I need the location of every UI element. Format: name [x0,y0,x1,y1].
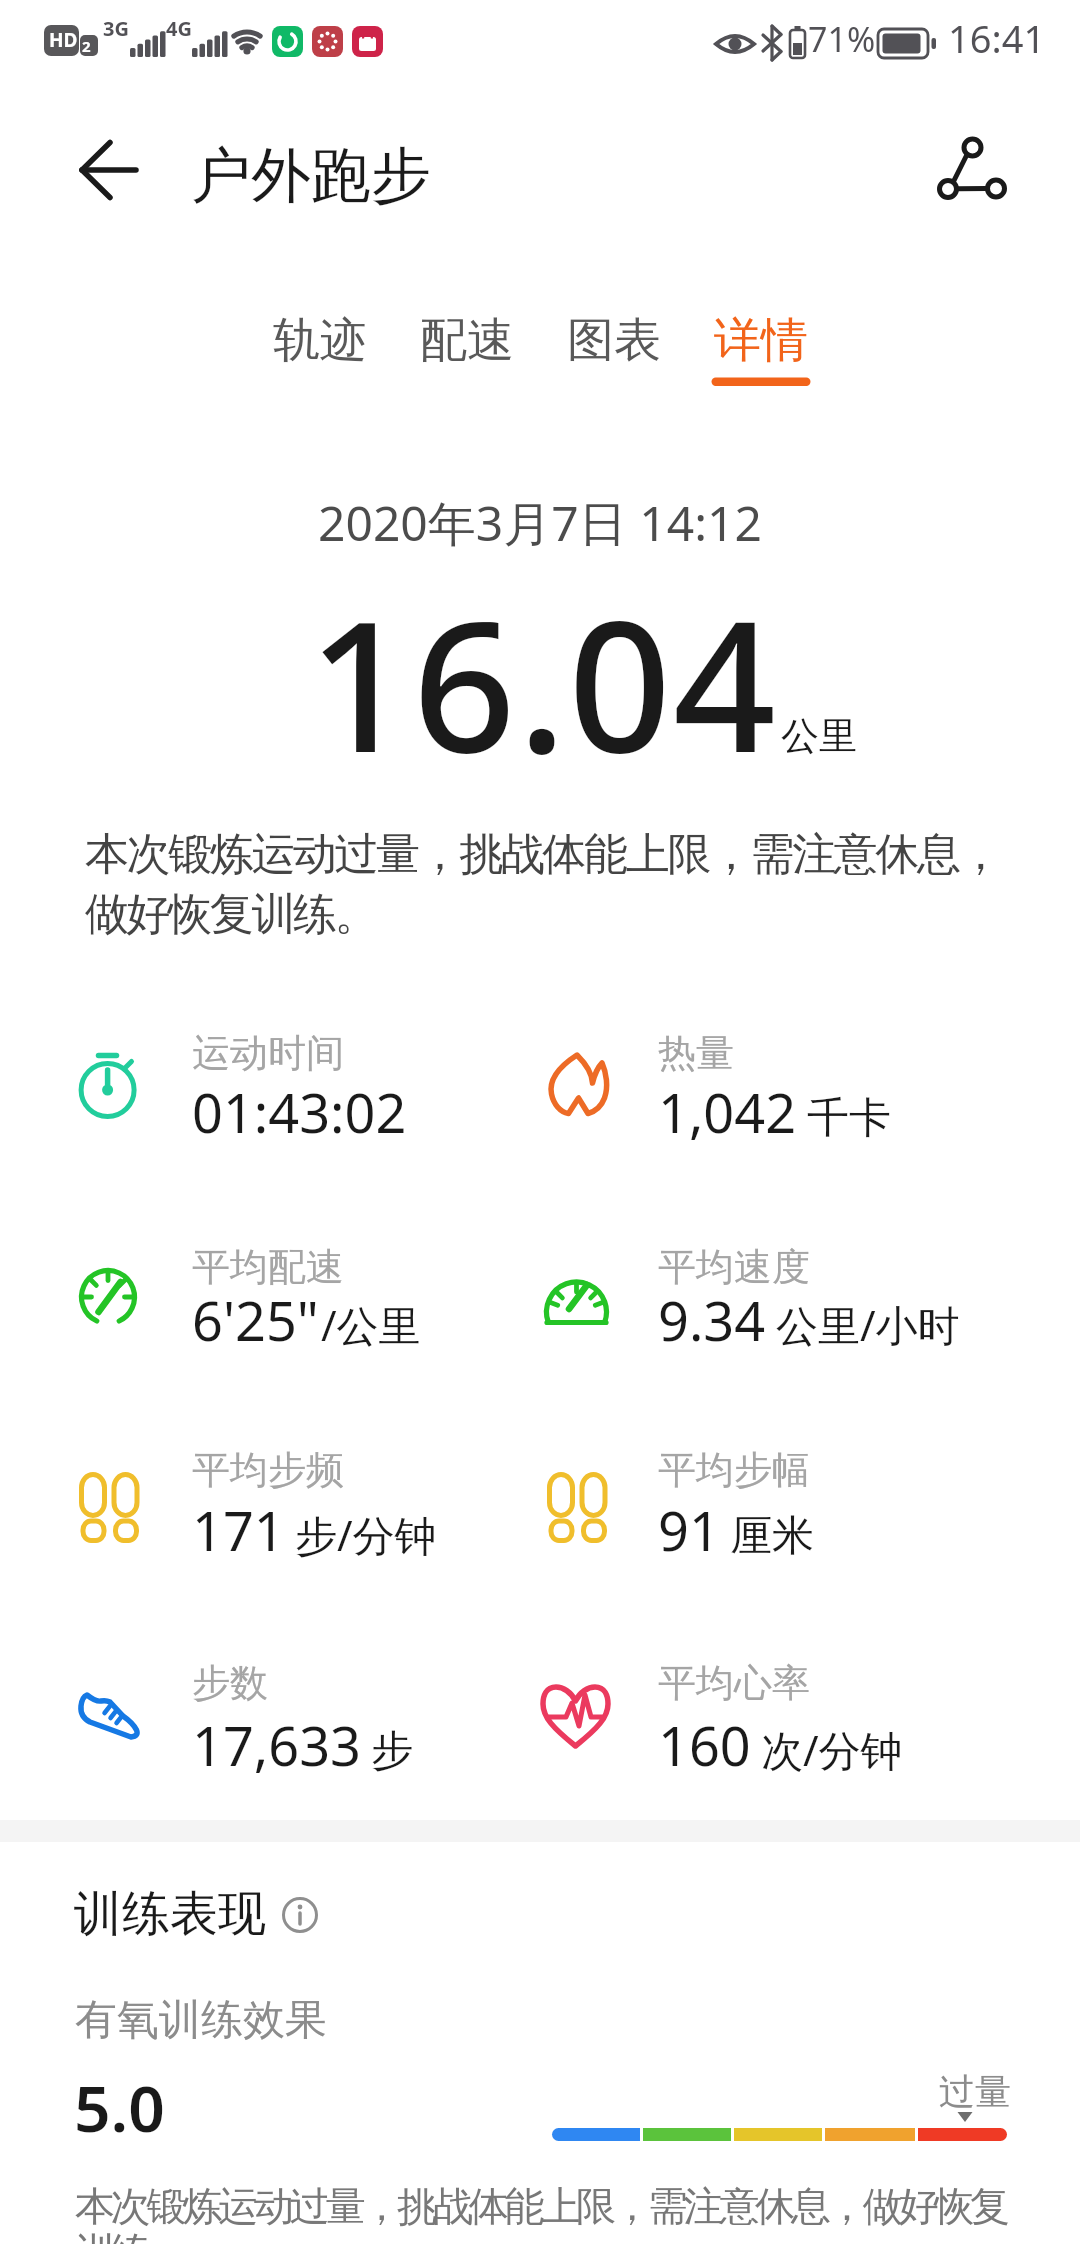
staticText: 2 [82,36,91,56]
staticText: 厘米 [730,1510,814,1563]
staticText: 图表 [567,311,661,370]
staticText: 平均心率 [658,1659,810,1707]
staticText: 步/分钟 [295,1506,437,1563]
button[interactable]: 图表 [559,305,669,375]
staticText: 01:43:02 [192,1075,407,1149]
staticText: 训练表现 [74,1884,266,1944]
staticText: HD [49,27,78,53]
button[interactable]: 详情 [706,305,816,375]
staticText: 平均步频 [192,1446,344,1494]
button[interactable] [60,140,150,202]
staticText: 17,633 [192,1708,361,1782]
staticText: 91 [658,1493,720,1567]
staticText: 运动时间 [192,1029,344,1077]
staticText: 轨迹 [273,311,367,370]
staticText: 4G [166,15,192,42]
staticText: 公里/小时 [776,1296,960,1353]
staticText: 平均配速 [192,1243,344,1291]
staticText: 5.0 [74,2064,165,2151]
staticText: 6'25" [192,1283,319,1357]
staticText: 公里 [781,712,857,760]
staticText: 160 [658,1708,751,1782]
staticText: 2020年3月7日 14:12 [318,490,762,556]
staticText: 本次锻炼运动过量，挑战体能上限，需注意休息，做好恢复 [75,2181,1006,2231]
staticText: 平均步幅 [658,1446,810,1494]
staticText: 平均速度 [658,1243,810,1291]
staticText: 步 [371,1725,413,1778]
staticText: 本次锻炼运动过量，挑战体能上限，需注意休息， [85,827,1001,882]
staticText: 71% [808,16,876,62]
staticText: 有氧训练效果 [75,1994,327,2047]
staticText: 训练。 [75,2227,183,2244]
staticText: 详情 [714,311,808,370]
staticText: 16:41 [948,12,1046,64]
staticText: 过量 [939,2069,1011,2114]
staticText: 步数 [192,1659,268,1707]
staticText: 3G [103,15,129,42]
staticText: 千卡 [807,1092,891,1145]
button[interactable] [925,125,1020,215]
button[interactable] [278,1893,322,1937]
button[interactable]: 配速 [412,305,522,375]
staticText: 171 [192,1493,285,1567]
staticText: 配速 [420,311,514,370]
staticText: /公里 [321,1296,421,1353]
staticText: 1,042 [658,1075,797,1149]
staticText: 做好恢复训练。 [85,887,377,942]
button[interactable]: 轨迹 [265,305,375,375]
staticText: 户外跑步 [191,138,431,214]
staticText: 9.34 [658,1283,766,1357]
staticText: 次/分钟 [761,1721,903,1778]
staticText: 16.04 [308,560,778,805]
staticText: 热量 [658,1029,734,1077]
